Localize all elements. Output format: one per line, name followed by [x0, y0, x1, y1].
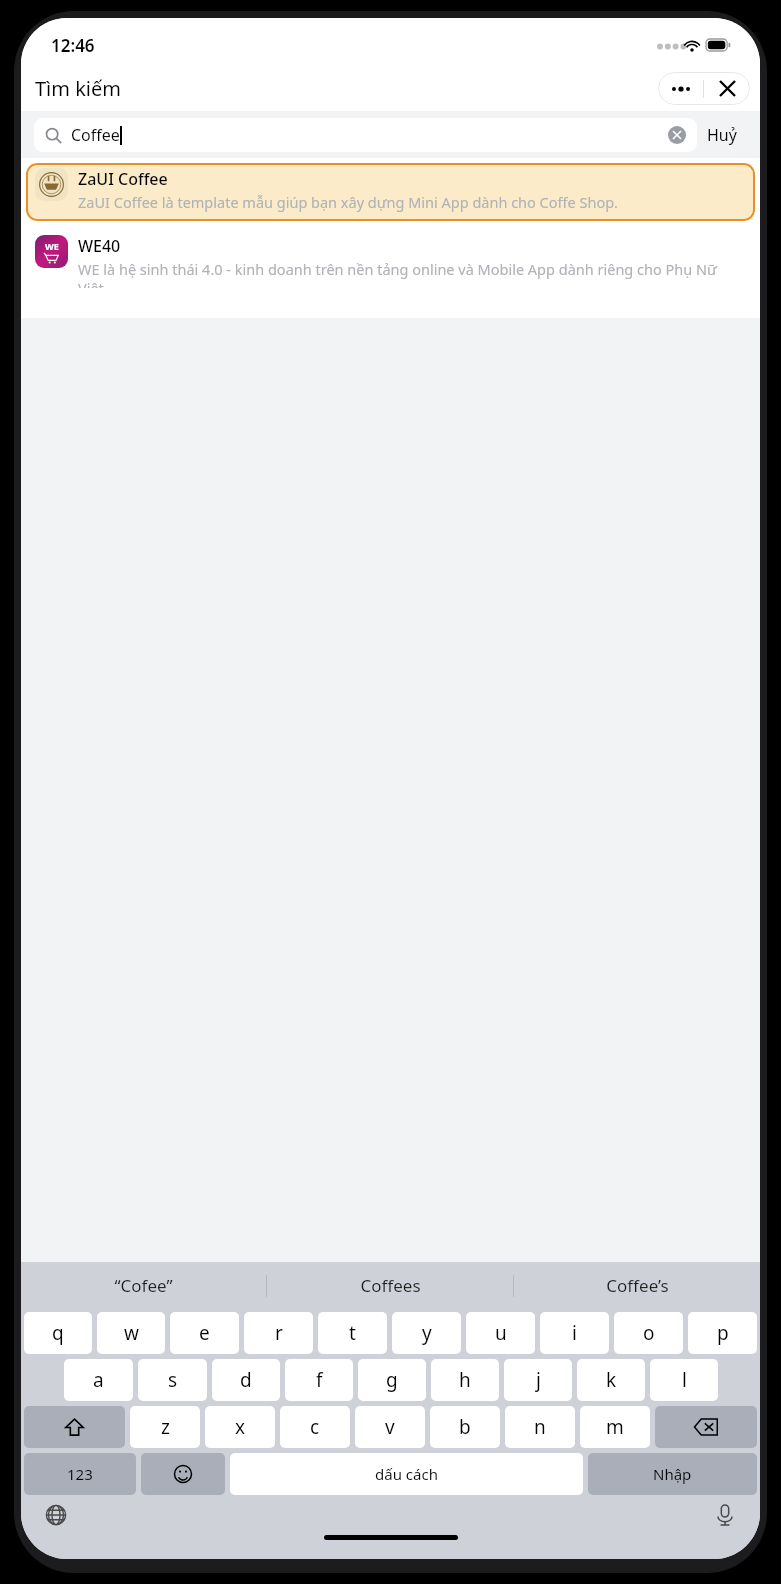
- button[interactable]: 123: [24, 1453, 136, 1495]
- button[interactable]: Coffee: [34, 118, 697, 152]
- staticText: dấu cách: [375, 1464, 438, 1484]
- staticText: e: [199, 1320, 210, 1346]
- button[interactable]: u: [466, 1312, 535, 1354]
- staticText: Coffees: [360, 1274, 421, 1297]
- button[interactable]: l: [650, 1359, 718, 1401]
- button[interactable]: Nhập: [588, 1453, 757, 1495]
- button[interactable]: “Cofee”: [21, 1262, 266, 1309]
- staticText: r: [275, 1320, 283, 1346]
- button[interactable]: Dictation: [708, 1498, 742, 1532]
- button[interactable]: f: [285, 1359, 353, 1401]
- button[interactable]: Backspace: [655, 1406, 757, 1448]
- button[interactable]: h: [431, 1359, 499, 1401]
- button[interactable]: q: [24, 1312, 92, 1354]
- button[interactable]: b: [430, 1406, 500, 1448]
- staticText: g: [386, 1367, 398, 1393]
- staticText: b: [459, 1414, 471, 1440]
- button[interactable]: v: [355, 1406, 425, 1448]
- staticText: q: [52, 1320, 64, 1346]
- staticText: n: [534, 1414, 546, 1440]
- staticText: ZaUI Coffee: [78, 168, 168, 190]
- button[interactable]: Coffees: [267, 1262, 513, 1309]
- button[interactable]: d: [212, 1359, 280, 1401]
- button[interactable]: Shift: [24, 1406, 125, 1448]
- staticText: WE là hệ sinh thái 4.0 - kinh doanh trên…: [78, 259, 745, 288]
- button[interactable]: i: [540, 1312, 609, 1354]
- staticText: Coffee’s: [606, 1274, 669, 1297]
- staticText: k: [606, 1367, 617, 1393]
- staticText: Huỷ: [707, 124, 737, 146]
- button[interactable]: r: [244, 1312, 313, 1354]
- staticText: z: [161, 1414, 170, 1440]
- staticText: m: [606, 1414, 624, 1440]
- button[interactable]: p: [688, 1312, 757, 1354]
- button[interactable]: m: [580, 1406, 650, 1448]
- staticText: v: [385, 1414, 395, 1440]
- button[interactable]: y: [392, 1312, 461, 1354]
- button[interactable]: ZaUI Coffee: [26, 163, 755, 221]
- staticText: “Cofee”: [114, 1274, 173, 1297]
- button[interactable]: o: [614, 1312, 683, 1354]
- staticText: w: [124, 1320, 139, 1346]
- staticText: j: [536, 1367, 541, 1393]
- staticText: Nhập: [653, 1464, 692, 1484]
- staticText: Tìm kiếm: [35, 75, 121, 102]
- button[interactable]: x: [205, 1406, 275, 1448]
- staticText: o: [643, 1320, 655, 1346]
- staticText: 123: [67, 1464, 93, 1484]
- button[interactable]: c: [280, 1406, 350, 1448]
- staticText: a: [93, 1367, 104, 1393]
- button[interactable]: n: [505, 1406, 575, 1448]
- button[interactable]: a: [64, 1359, 133, 1401]
- staticText: l: [682, 1367, 687, 1393]
- button[interactable]: Clear text: [668, 126, 686, 144]
- button[interactable]: s: [138, 1359, 207, 1401]
- button[interactable]: Close: [704, 72, 750, 105]
- button[interactable]: j: [504, 1359, 572, 1401]
- button[interactable]: e: [170, 1312, 239, 1354]
- button[interactable]: Coffee’s: [514, 1262, 760, 1309]
- staticText: d: [240, 1367, 252, 1393]
- button[interactable]: k: [577, 1359, 645, 1401]
- button[interactable]: Change keyboard: [39, 1498, 73, 1532]
- button[interactable]: dấu cách: [230, 1453, 583, 1495]
- button[interactable]: More options: [658, 72, 703, 105]
- staticText: c: [310, 1414, 320, 1440]
- staticText: ZaUI Coffee là template mẫu giúp bạn xây…: [78, 192, 618, 212]
- staticText: f: [316, 1367, 323, 1393]
- button[interactable]: g: [358, 1359, 426, 1401]
- button[interactable]: w: [97, 1312, 165, 1354]
- button[interactable]: WE: [26, 230, 755, 288]
- staticText: y: [422, 1320, 432, 1346]
- staticText: Coffee: [71, 124, 120, 146]
- button[interactable]: Emoji: [141, 1453, 225, 1495]
- staticText: h: [459, 1367, 471, 1393]
- staticText: WE40: [78, 235, 121, 257]
- staticText: i: [572, 1320, 577, 1346]
- staticText: p: [717, 1320, 729, 1346]
- staticText: s: [168, 1367, 178, 1393]
- staticText: 12:46: [51, 34, 95, 57]
- button[interactable]: Huỷ: [697, 118, 747, 152]
- staticText: x: [235, 1414, 246, 1440]
- staticText: WE: [45, 240, 59, 252]
- staticText: u: [495, 1320, 507, 1346]
- button[interactable]: t: [318, 1312, 387, 1354]
- staticText: t: [349, 1320, 356, 1346]
- button[interactable]: z: [130, 1406, 200, 1448]
